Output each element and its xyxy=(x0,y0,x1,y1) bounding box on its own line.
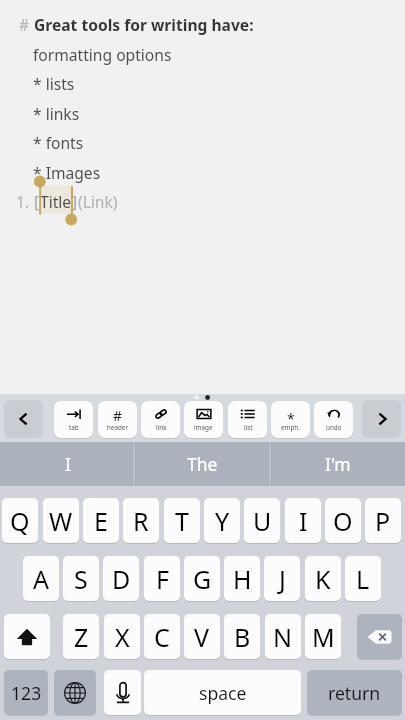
button[interactable]: R xyxy=(123,498,159,543)
staticText: tab xyxy=(69,423,79,432)
staticText: # xyxy=(113,406,123,422)
button[interactable]: * xyxy=(271,401,310,438)
button[interactable]: I'm xyxy=(270,442,405,486)
staticText: formatting options xyxy=(33,44,172,65)
button[interactable]: X xyxy=(104,614,140,659)
button[interactable]: W xyxy=(43,498,79,543)
button[interactable]: G xyxy=(184,556,220,601)
button[interactable]: N xyxy=(265,614,301,659)
button[interactable]: Q xyxy=(2,498,38,543)
button[interactable]: # xyxy=(98,401,137,438)
button[interactable]: Shift xyxy=(4,614,50,659)
staticText: A xyxy=(33,562,49,596)
staticText: O xyxy=(333,504,353,538)
staticText: F xyxy=(156,562,169,596)
staticText: V xyxy=(194,620,210,654)
staticText: * xyxy=(287,409,295,425)
staticText: list xyxy=(244,423,253,432)
button[interactable]: O xyxy=(325,498,361,543)
staticText: # xyxy=(19,14,30,35)
button[interactable]: Next toolbar page xyxy=(362,400,401,438)
staticText: return xyxy=(328,681,381,705)
staticText: G xyxy=(193,562,212,596)
button[interactable]: Y xyxy=(204,498,240,543)
button[interactable]: link xyxy=(141,401,180,438)
button[interactable]: image xyxy=(184,401,223,438)
button[interactable]: T xyxy=(164,498,200,543)
staticText: B xyxy=(234,620,251,654)
button[interactable]: J xyxy=(264,556,300,601)
button[interactable]: Backspace xyxy=(357,614,402,659)
staticText: K xyxy=(315,562,331,596)
staticText: N xyxy=(273,620,293,654)
staticText: The xyxy=(187,452,218,476)
button[interactable]: S xyxy=(63,556,99,601)
button[interactable]: P xyxy=(365,498,401,543)
staticText: * links xyxy=(33,103,80,124)
button[interactable]: space xyxy=(144,670,301,715)
staticText: W xyxy=(49,504,73,538)
button[interactable]: H xyxy=(224,556,260,601)
staticText: E xyxy=(94,504,108,538)
staticText: space xyxy=(199,681,247,705)
staticText: * Images xyxy=(33,162,101,183)
staticText: M xyxy=(312,620,335,654)
staticText: 1. xyxy=(16,191,30,212)
staticText: Y xyxy=(215,504,230,538)
staticText: U xyxy=(253,504,272,538)
button[interactable]: I xyxy=(0,442,135,486)
button[interactable]: Previous toolbar page xyxy=(4,400,43,438)
button[interactable]: A xyxy=(23,556,59,601)
button[interactable]: Switch language xyxy=(54,670,96,715)
staticText: link xyxy=(156,423,167,432)
staticText: I xyxy=(65,452,71,476)
button[interactable]: U xyxy=(244,498,280,543)
staticText: Title xyxy=(40,191,72,212)
staticText: ] xyxy=(72,191,78,212)
staticText: [ xyxy=(34,191,40,212)
staticText: L xyxy=(356,562,370,596)
staticText: undo xyxy=(326,423,342,432)
staticText: 123 xyxy=(11,681,42,705)
button[interactable]: M xyxy=(305,614,341,659)
button[interactable]: The xyxy=(135,442,270,486)
staticText: I xyxy=(299,504,308,538)
button[interactable]: K xyxy=(305,556,341,601)
staticText: R xyxy=(133,504,149,538)
button[interactable]: return xyxy=(307,670,402,715)
staticText: * lists xyxy=(33,73,75,94)
button[interactable]: B xyxy=(224,614,260,659)
staticText: S xyxy=(74,562,88,596)
staticText: Q xyxy=(10,504,30,538)
staticText: D xyxy=(112,562,131,596)
button[interactable]: V xyxy=(184,614,220,659)
button[interactable]: undo xyxy=(314,401,353,438)
staticText: emph. xyxy=(281,423,300,432)
staticText: P xyxy=(375,504,391,538)
button[interactable]: F xyxy=(144,556,180,601)
button[interactable]: I xyxy=(285,498,321,543)
staticText: * fonts xyxy=(33,132,84,153)
staticText: image xyxy=(194,423,213,432)
button[interactable]: E xyxy=(83,498,119,543)
button[interactable]: Voice input xyxy=(104,670,141,715)
staticText: H xyxy=(233,562,252,596)
button[interactable]: L xyxy=(345,556,381,601)
staticText: X xyxy=(115,620,130,654)
staticText: Great tools for writing have: xyxy=(34,14,254,35)
staticText: header xyxy=(107,423,129,432)
button[interactable]: 123 xyxy=(4,670,48,715)
button[interactable]: D xyxy=(103,556,139,601)
staticText: T xyxy=(175,504,189,538)
staticText: (Link) xyxy=(78,191,118,212)
button[interactable]: C xyxy=(144,614,180,659)
staticText: J xyxy=(279,562,286,596)
staticText: C xyxy=(154,620,170,654)
button[interactable]: list xyxy=(228,401,267,438)
button[interactable]: Z xyxy=(63,614,99,659)
button[interactable]: tab xyxy=(54,401,93,438)
staticText: I'm xyxy=(325,452,351,476)
staticText: Z xyxy=(74,620,89,654)
